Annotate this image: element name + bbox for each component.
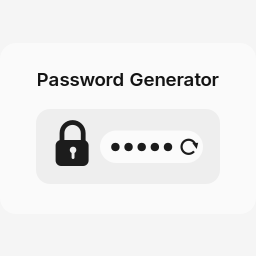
staticText: Password Generator — [36, 68, 218, 90]
button[interactable]: Regenerate password — [100, 130, 203, 163]
